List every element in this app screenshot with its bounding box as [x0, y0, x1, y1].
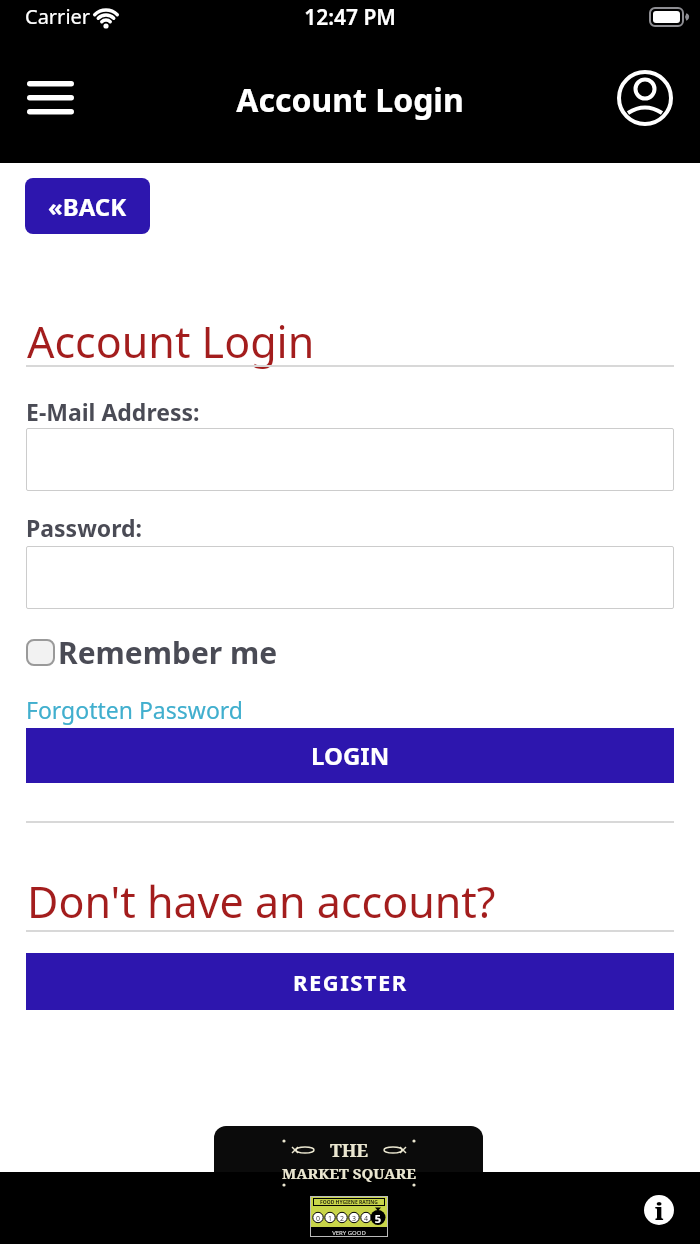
staticText: 12:47 PM: [0, 3, 700, 32]
staticText: 5: [373, 1211, 383, 1226]
staticText: REGISTER: [293, 967, 408, 997]
staticText: 4: [362, 1214, 370, 1224]
button[interactable]: «BACK: [25, 178, 150, 234]
staticText: THE: [280, 1138, 418, 1163]
staticText: Remember me: [58, 632, 278, 673]
button[interactable]: [615, 68, 675, 128]
staticText: Account Login: [0, 78, 700, 122]
button[interactable]: [26, 428, 674, 491]
button[interactable]: [26, 546, 674, 609]
button[interactable]: [17, 70, 85, 126]
staticText: «BACK: [48, 190, 127, 223]
staticText: Carrier: [25, 3, 91, 30]
staticText: Password:: [26, 512, 143, 543]
staticText: FOOD HYGIENE RATING: [320, 1199, 378, 1206]
staticText: 2: [338, 1214, 346, 1224]
button[interactable]: i: [644, 1195, 674, 1225]
staticText: 0: [314, 1214, 322, 1224]
staticText: LOGIN: [311, 739, 390, 772]
button[interactable]: Forgotten Password: [26, 694, 243, 725]
staticText: MARKET SQUARE: [280, 1163, 418, 1183]
staticText: Account Login: [27, 312, 315, 371]
button[interactable]: Remember me: [26, 632, 278, 673]
staticText: 3: [350, 1214, 358, 1224]
staticText: Don't have an account?: [27, 872, 496, 931]
staticText: i: [655, 1195, 664, 1225]
staticText: E-Mail Address:: [26, 396, 200, 427]
staticText: VERY GOOD: [310, 1229, 388, 1237]
button[interactable]: REGISTER: [26, 953, 674, 1010]
button[interactable]: LOGIN: [26, 728, 674, 783]
staticText: 1: [326, 1214, 334, 1224]
